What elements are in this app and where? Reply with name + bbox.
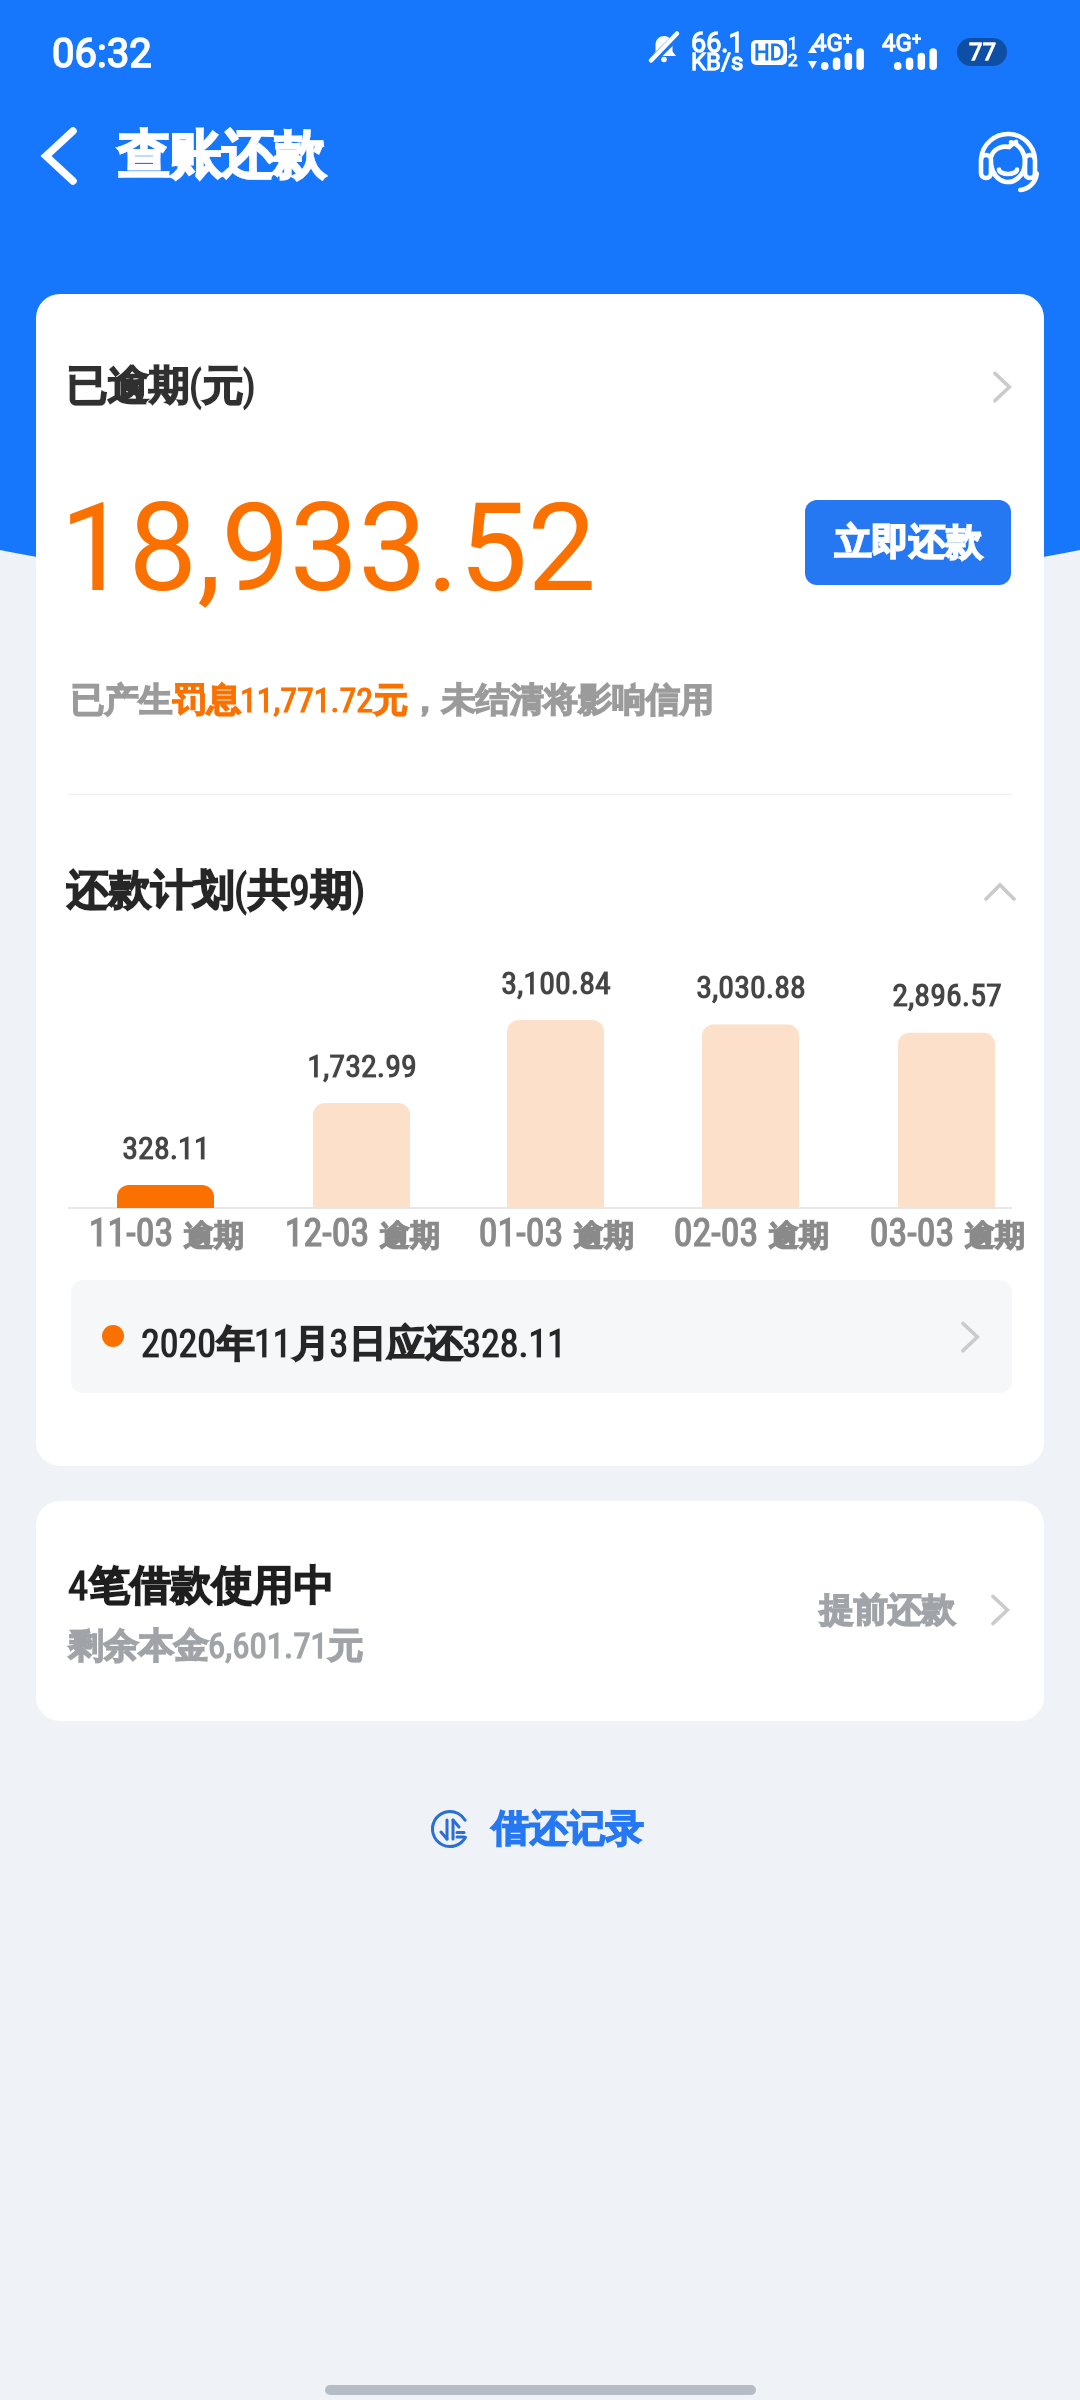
staticText: 2,896.57 xyxy=(837,976,1044,1014)
staticText: 01-03 逾期 xyxy=(446,1211,666,1256)
staticText: 2 xyxy=(788,50,798,70)
button[interactable]: 2020年11月3日应还328.11 xyxy=(71,1280,1012,1393)
staticText: 还款计划(共9期) xyxy=(66,865,366,918)
button[interactable]: 还款计划(共9期) xyxy=(36,859,1044,924)
staticText: 02-03 逾期 xyxy=(641,1211,861,1256)
button[interactable]: 立即还款 xyxy=(805,500,1011,585)
staticText: 66.1 xyxy=(691,27,744,59)
staticText: 借还记录 xyxy=(491,1805,643,1853)
staticText: 1 xyxy=(788,33,798,53)
staticText: 4G⁺ xyxy=(813,29,853,57)
staticText: 12-03 逾期 xyxy=(252,1211,472,1256)
staticText: 3,100.84 xyxy=(446,964,666,1002)
staticText: 已逾期(元) xyxy=(66,361,256,413)
staticText: 4笔借款使用中 xyxy=(68,1561,335,1613)
button[interactable]: 已逾期(元) xyxy=(36,353,1044,421)
staticText: 3,030.88 xyxy=(641,968,861,1006)
staticText: 1,732.99 xyxy=(252,1047,472,1085)
button[interactable]: Back xyxy=(0,115,341,197)
staticText: 03-03 逾期 xyxy=(837,1211,1044,1256)
staticText: 77 xyxy=(969,38,996,66)
staticText: 11-03 逾期 xyxy=(56,1211,276,1256)
staticText: 剩余本金6,601.71元 xyxy=(68,1624,363,1668)
staticText: 328.11 xyxy=(56,1129,276,1167)
staticText: 已产生罚息11,771.72元，未结清将影响信用 xyxy=(70,679,714,722)
staticText: 2020年11月3日应还328.11 xyxy=(141,1320,567,1368)
staticText: 查账还款 xyxy=(117,123,325,189)
staticText: 4G⁺ xyxy=(882,29,922,57)
other: Collapse xyxy=(978,870,1022,914)
staticText: 立即还款 xyxy=(834,519,982,566)
button[interactable]: 借还记录 xyxy=(421,1795,653,1863)
staticText: 18,933.52 xyxy=(60,477,597,620)
staticText: HD xyxy=(754,40,785,65)
button[interactable]: Customer service xyxy=(966,118,1052,204)
staticText: KB/s xyxy=(691,48,744,76)
other: Back xyxy=(33,125,95,187)
staticText: 06:32 xyxy=(52,30,152,77)
staticText: 提前还款 xyxy=(819,1589,955,1632)
button[interactable]: 4笔借款使用中 xyxy=(36,1501,1044,1721)
